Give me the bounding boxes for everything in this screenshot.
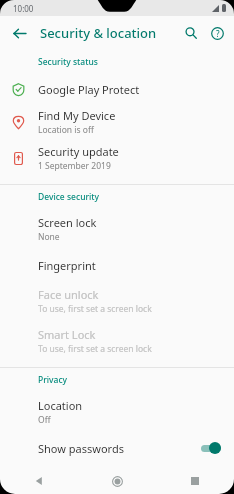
staticText: Screen lock — [38, 215, 97, 230]
button[interactable]: Find My Device — [0, 104, 234, 140]
staticText: Google Play Protect — [38, 82, 140, 97]
staticText: Location — [38, 398, 83, 413]
staticText: Off — [38, 414, 51, 426]
staticText: Security update — [38, 144, 119, 159]
staticText: 1 September 2019 — [38, 160, 111, 172]
button[interactable]: Show passwords — [0, 432, 234, 464]
button[interactable]: Back — [0, 468, 78, 494]
staticText: Show passwords — [38, 441, 198, 456]
staticText: Security status — [38, 56, 98, 68]
staticText: 10:00 — [13, 3, 34, 14]
staticText: Smart Lock — [38, 327, 96, 342]
staticText: Security & location — [40, 24, 157, 42]
button[interactable]: Face unlock — [0, 281, 234, 321]
staticText: Fingerprint — [38, 258, 96, 273]
staticText: Face unlock — [38, 287, 99, 302]
button[interactable]: Recents — [156, 468, 234, 494]
button[interactable]: Screen lock — [0, 209, 234, 249]
button[interactable]: Search — [178, 20, 204, 46]
button[interactable]: Google Play Protect — [0, 74, 234, 104]
button[interactable]: Security update — [0, 140, 234, 176]
button[interactable]: Home — [78, 468, 156, 494]
button[interactable]: Help — [204, 20, 230, 46]
button[interactable]: Location — [0, 392, 234, 432]
staticText: Find My Device — [38, 108, 116, 123]
staticText: To use, first set a screen lock — [38, 303, 152, 315]
staticText: Location is off — [38, 124, 94, 136]
button[interactable]: Smart Lock — [0, 321, 234, 361]
staticText: Device security — [38, 191, 100, 203]
staticText: Privacy — [38, 374, 68, 386]
staticText: None — [38, 231, 60, 243]
button[interactable]: Fingerprint — [0, 249, 234, 281]
staticText: ? — [216, 28, 220, 39]
staticText: To use, first set a screen lock — [38, 343, 152, 355]
button[interactable]: Back — [6, 20, 32, 46]
